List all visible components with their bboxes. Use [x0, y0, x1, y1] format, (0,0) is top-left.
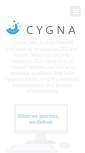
staticText: we deliver. [29, 119, 54, 125]
staticText: CYGNA [26, 22, 79, 38]
staticText: What we promise, [18, 113, 60, 119]
staticText: Cygna Labs is a worldwide provider of in… [6, 39, 79, 94]
button[interactable]: Menu [70, 6, 81, 17]
